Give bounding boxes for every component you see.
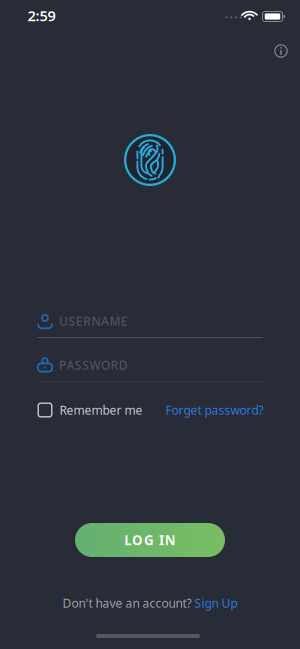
- staticText: USERNAME: [59, 313, 128, 329]
- button[interactable]: Sign Up: [194, 595, 237, 611]
- staticText: Sign Up: [194, 595, 237, 611]
- staticText: 2:59: [27, 6, 55, 25]
- staticText: Forget password?: [165, 402, 263, 418]
- staticText: Remember me: [59, 402, 142, 418]
- staticText: LOG: [124, 531, 154, 549]
- staticText: Don't have an account?: [62, 595, 191, 611]
- button[interactable]: Remember me: [37, 401, 167, 419]
- staticText: IN: [159, 531, 176, 549]
- staticText: PASSWORD: [59, 357, 128, 373]
- button[interactable]: LOG: [75, 523, 225, 557]
- button[interactable]: Info: [269, 39, 293, 63]
- button[interactable]: Forget password?: [153, 401, 263, 419]
